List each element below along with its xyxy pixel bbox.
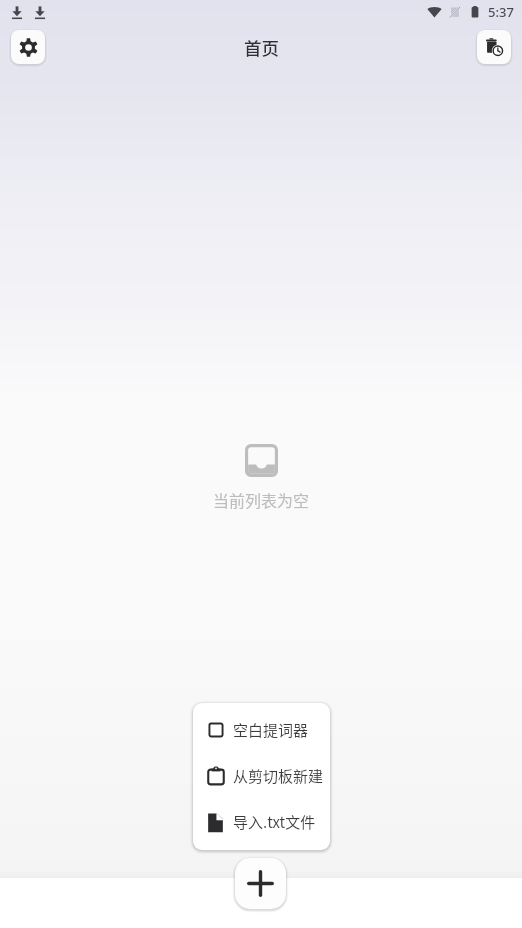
button[interactable]: History — [477, 30, 511, 64]
staticText: 首页 — [244, 35, 279, 60]
staticText: 导入.txt文件 — [233, 811, 316, 833]
button[interactable]: Settings — [11, 30, 45, 64]
staticText: 当前列表为空 — [213, 488, 310, 511]
staticText: 5:37 — [488, 3, 514, 21]
button[interactable]: 空白提词器 — [193, 707, 330, 753]
staticText: 从剪切板新建 — [233, 765, 324, 787]
button[interactable]: 导入.txt文件 — [193, 799, 330, 845]
button[interactable]: Add — [235, 858, 286, 909]
staticText: 空白提词器 — [233, 719, 309, 741]
button[interactable]: 从剪切板新建 — [193, 753, 330, 799]
